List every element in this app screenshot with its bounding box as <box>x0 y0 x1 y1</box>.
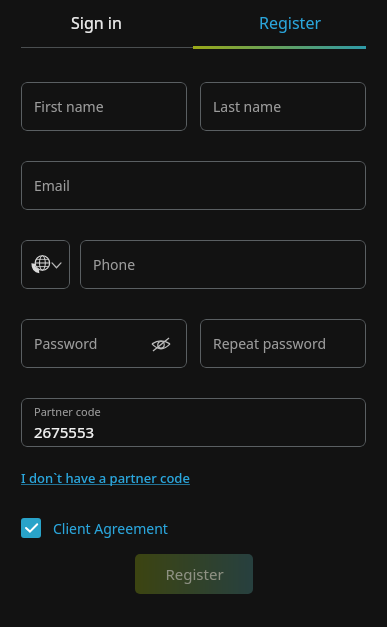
staticText: Client Agreement <box>53 519 168 538</box>
button[interactable]: Email <box>21 161 366 210</box>
staticText: Partner code <box>34 404 101 419</box>
button[interactable]: Last name <box>200 82 366 131</box>
staticText: Repeat password <box>213 334 327 353</box>
button[interactable]: Password <box>21 319 187 368</box>
button[interactable]: Show password <box>148 331 174 357</box>
staticText: Phone <box>93 255 136 274</box>
staticText: I don`t have a partner code <box>21 469 190 487</box>
button[interactable]: I don`t have a partner code <box>21 469 190 487</box>
button[interactable]: Repeat password <box>200 319 366 368</box>
staticText: Sign in <box>71 12 122 34</box>
button[interactable]: Client Agreement <box>21 518 168 538</box>
staticText: Last name <box>213 97 282 116</box>
staticText: First name <box>34 97 104 116</box>
staticText: Register <box>259 12 322 34</box>
button[interactable]: Phone <box>80 240 366 289</box>
button[interactable]: Register <box>135 554 253 594</box>
button[interactable]: Register <box>193 0 387 46</box>
staticText: Register <box>165 564 224 584</box>
staticText: 2675553 <box>34 422 95 442</box>
button[interactable]: Select country code <box>21 240 70 289</box>
button[interactable]: Sign in <box>0 0 193 46</box>
button[interactable]: Partner code <box>21 398 366 447</box>
staticText: Password <box>34 334 98 353</box>
staticText: Email <box>34 176 70 195</box>
button[interactable]: First name <box>21 82 187 131</box>
